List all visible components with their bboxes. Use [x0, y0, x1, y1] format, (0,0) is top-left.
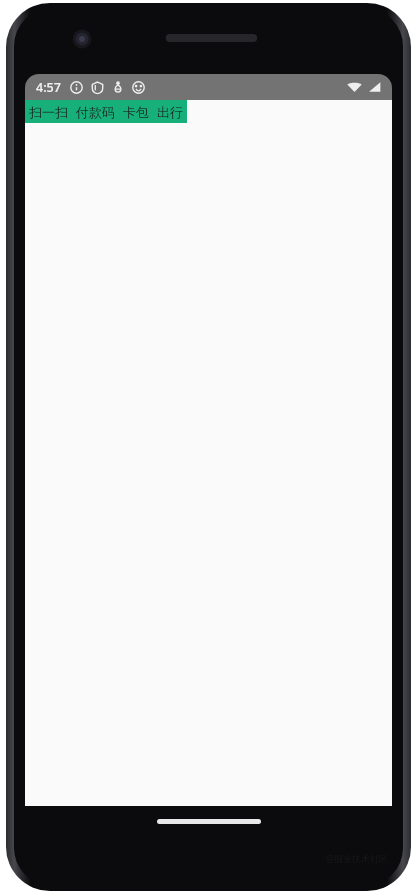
staticText: 4:57	[36, 79, 61, 96]
button[interactable]: Home	[157, 819, 261, 824]
button[interactable]: 付款码	[72, 100, 119, 123]
button[interactable]: 扫一扫	[25, 100, 72, 123]
staticText: 卡包	[123, 104, 149, 120]
button[interactable]: 卡包	[119, 100, 153, 123]
staticText: @掘金技术社区	[326, 852, 389, 864]
staticText: 付款码	[76, 104, 115, 120]
staticText: 扫一扫	[29, 104, 68, 120]
button[interactable]: 出行	[153, 100, 187, 123]
staticText: 出行	[157, 104, 183, 120]
